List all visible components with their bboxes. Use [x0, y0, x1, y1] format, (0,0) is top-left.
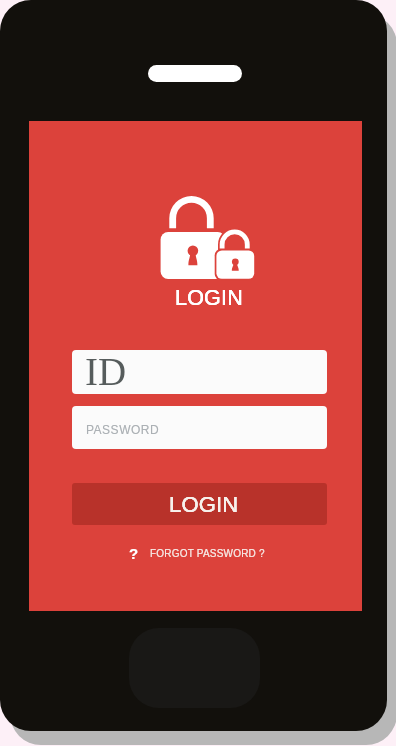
staticText: PASSWORD: [86, 423, 160, 436]
button[interactable]: ?: [129, 545, 265, 561]
staticText: LOGIN: [169, 492, 239, 517]
staticText: FORGOT PASSWORD ?: [150, 548, 265, 559]
staticText: LOGIN: [175, 286, 243, 310]
button[interactable]: ID: [72, 350, 327, 394]
button[interactable]: LOGIN: [175, 286, 243, 310]
other: Secure login: [150, 190, 265, 285]
staticText: ID: [85, 350, 127, 393]
staticText: ?: [129, 545, 139, 561]
button[interactable]: PASSWORD: [72, 406, 327, 449]
staticText: LOGIN: [169, 492, 239, 517]
button[interactable]: LOGIN: [72, 483, 327, 525]
staticText: LOGIN: [175, 286, 243, 310]
